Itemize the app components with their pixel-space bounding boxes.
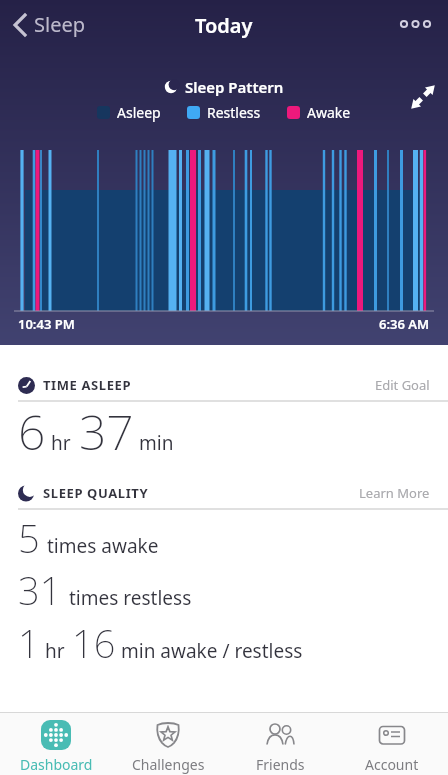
staticText: times restless	[69, 585, 192, 611]
staticText: 6:36 AM	[379, 315, 430, 333]
staticText: Learn More	[359, 484, 430, 502]
staticText: Awake	[307, 103, 351, 122]
button[interactable]: Challenges	[112, 713, 224, 775]
staticText: 16	[72, 617, 116, 669]
staticText: min	[139, 430, 174, 456]
staticText: times awake	[47, 533, 159, 559]
staticText: Account	[365, 755, 419, 774]
staticText: Restless	[207, 103, 261, 122]
staticText: Edit Goal	[375, 376, 430, 394]
staticText: 31	[18, 564, 62, 616]
staticText: min awake / restless	[121, 638, 303, 664]
button[interactable]	[398, 18, 434, 30]
staticText: 1	[18, 617, 40, 669]
button[interactable]: Sleep	[8, 7, 89, 42]
staticText: SLEEP QUALITY	[43, 484, 149, 502]
staticText: hr	[51, 430, 71, 456]
staticText: 5	[18, 512, 40, 564]
staticText: 37	[79, 399, 134, 464]
button[interactable]: Friends	[224, 713, 336, 775]
button[interactable]: Edit Goal	[375, 376, 430, 394]
staticText: 6	[18, 399, 46, 464]
staticText: Dashboard	[20, 755, 93, 774]
staticText: Friends	[256, 755, 305, 774]
button[interactable]: Account	[336, 713, 448, 775]
button[interactable]: Learn More	[359, 484, 430, 502]
staticText: hr	[45, 638, 65, 664]
button[interactable]: Dashboard	[0, 713, 112, 775]
button[interactable]	[409, 83, 437, 111]
staticText: Today	[195, 12, 253, 39]
staticText: Challenges	[132, 755, 205, 774]
staticText: Sleep	[34, 11, 85, 38]
staticText: 10:43 PM	[18, 315, 75, 333]
staticText: TIME ASLEEP	[43, 376, 132, 394]
staticText: Asleep	[117, 103, 161, 122]
staticText: Sleep Pattern	[185, 77, 284, 97]
